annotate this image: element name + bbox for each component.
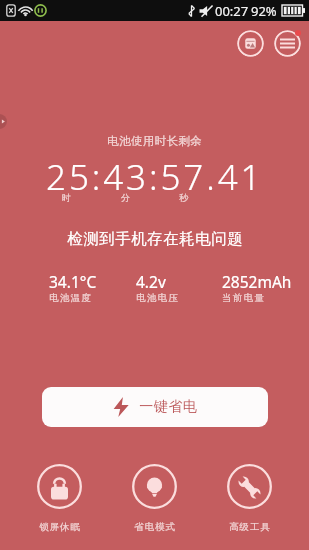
staticText: 34.1°C: [49, 271, 97, 292]
staticText: 检测到手机存在耗电问题: [67, 229, 243, 249]
staticText: 92%: [251, 2, 277, 20]
staticText: 一键省电: [139, 398, 197, 416]
staticText: 省电模式: [134, 521, 176, 533]
staticText: 电池温度: [49, 292, 93, 304]
staticText: 秒: [179, 192, 188, 203]
staticText: 锁屏休眠: [39, 521, 81, 533]
staticText: 2852mAh: [222, 271, 292, 292]
button[interactable]: Menu: [274, 30, 301, 57]
staticText: 高级工具: [229, 521, 271, 533]
staticText: 电池电压: [136, 292, 180, 304]
staticText: 25:43:57.41: [46, 153, 264, 201]
button[interactable]: Advanced tools: [217, 464, 282, 533]
staticText: 电池使用时长剩余: [107, 134, 203, 148]
button[interactable]: Battery report: [237, 30, 264, 57]
button[interactable]: 一键省电: [42, 387, 268, 427]
staticText: 4.2v: [136, 271, 166, 292]
staticText: 时: [62, 192, 71, 203]
other: Power saving mode: [132, 464, 177, 509]
button[interactable]: Power saving mode: [122, 464, 187, 533]
staticText: 00:27: [215, 2, 249, 20]
other: Lock screen sleep: [37, 464, 82, 509]
button[interactable]: Lock screen sleep: [27, 464, 92, 533]
staticText: 分: [121, 192, 130, 203]
staticText: 当前电量: [222, 292, 266, 304]
other: Advanced tools: [227, 464, 272, 509]
